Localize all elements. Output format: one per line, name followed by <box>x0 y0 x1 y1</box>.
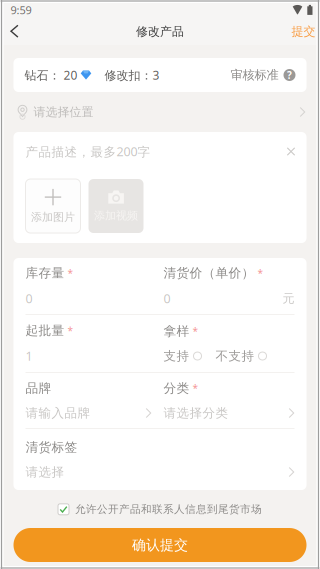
staticText: 添加视频 <box>94 209 138 222</box>
staticText: ? <box>287 68 292 82</box>
staticText: 添加图片 <box>31 210 75 224</box>
staticText: 审核标准 <box>230 67 278 83</box>
staticText: 允许公开产品和联系人信息到尾货市场 <box>75 503 262 516</box>
staticText: * <box>67 324 73 337</box>
staticText: 支持 <box>163 348 189 364</box>
staticText: 分类 <box>163 380 189 396</box>
staticText: 0 <box>25 290 32 307</box>
button[interactable]: 添加视频 <box>88 179 143 233</box>
button[interactable]: 确认提交 <box>13 528 306 562</box>
staticText: 请选择分类 <box>163 405 228 421</box>
staticText: 清货标签 <box>25 439 77 455</box>
staticText: 请选择 <box>25 464 64 480</box>
staticText: 库存量 <box>25 265 64 281</box>
staticText: 起批量 <box>25 322 64 338</box>
button[interactable]: 品牌 <box>25 380 163 421</box>
staticText: 清货价（单价） <box>163 265 254 281</box>
button[interactable]: 清除描述 <box>282 143 299 160</box>
button[interactable]: 不支持 <box>215 348 266 364</box>
staticText: * <box>257 266 263 280</box>
staticText: 不支持 <box>215 348 254 364</box>
button[interactable]: 提交 <box>289 18 317 45</box>
staticText: 请输入品牌 <box>25 405 90 421</box>
button[interactable]: 清货标签 <box>13 429 306 490</box>
staticText: 修改扣：3 <box>104 67 159 83</box>
staticText: 0 <box>163 290 170 307</box>
button[interactable]: 审核标准 <box>230 67 295 83</box>
staticText: * <box>192 324 198 338</box>
staticText: 修改产品 <box>136 24 184 39</box>
staticText: 品牌 <box>25 380 51 396</box>
staticText: 9:59 <box>10 2 31 17</box>
staticText: 提交 <box>291 24 315 39</box>
button[interactable]: 返回 <box>2 19 26 43</box>
staticText: 请选择位置 <box>33 104 93 119</box>
button[interactable]: 允许公开产品和联系人信息到尾货市场 <box>58 503 262 516</box>
button[interactable]: 添加图片 <box>25 179 80 233</box>
staticText: * <box>192 381 198 395</box>
staticText: 拿样 <box>163 323 189 339</box>
staticText: * <box>67 266 73 280</box>
staticText: 确认提交 <box>132 536 188 554</box>
staticText: 钻石： 20 <box>24 67 77 83</box>
button[interactable]: 请选择位置 <box>2 92 317 132</box>
staticText: 1 <box>25 347 32 364</box>
button[interactable]: 分类 <box>163 380 294 421</box>
staticText: 产品描述，最多200字 <box>25 143 150 160</box>
button[interactable]: 支持 <box>163 348 201 364</box>
staticText: 元 <box>282 291 294 306</box>
